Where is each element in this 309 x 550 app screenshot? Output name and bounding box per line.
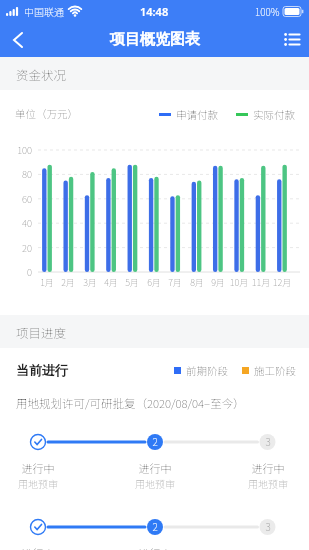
staticText: 4月 <box>99 276 123 289</box>
staticText: 20 <box>8 241 32 255</box>
staticText: 11月 <box>249 276 273 289</box>
staticText: 申请付款 <box>176 107 218 122</box>
staticText: 项目概览图表 <box>110 30 200 49</box>
staticText: 用地预审 <box>243 476 293 490</box>
staticText: 2 <box>147 434 163 448</box>
staticText: 中国联通 <box>24 4 64 18</box>
staticText: 单位（万元） <box>15 106 78 121</box>
staticText: 14:48 <box>140 4 169 19</box>
staticText: 进行中 <box>130 545 180 550</box>
staticText: 60 <box>8 192 32 206</box>
staticText: 资金状况 <box>16 65 67 83</box>
staticText: 100% <box>255 4 280 18</box>
staticText: 80 <box>8 167 32 181</box>
button[interactable] <box>274 22 309 57</box>
staticText: 7月 <box>163 276 187 289</box>
staticText: 前期阶段 <box>186 363 228 378</box>
staticText: 施工阶段 <box>254 363 296 378</box>
staticText: 3月 <box>78 276 102 289</box>
staticText: 3 <box>260 434 276 448</box>
staticText: 40 <box>8 216 32 230</box>
staticText: 实际付款 <box>253 107 295 122</box>
staticText: 进行中 <box>13 545 63 550</box>
staticText: 12月 <box>270 276 294 289</box>
staticText: 用地规划许可/可研批复（2020/08/04–至今） <box>16 395 245 412</box>
staticText: 进行中 <box>130 460 180 476</box>
staticText: 100 <box>8 143 32 157</box>
staticText: 9月 <box>206 276 230 289</box>
staticText: 1月 <box>35 276 59 289</box>
staticText: 当前进行 <box>16 362 68 378</box>
staticText: 2月 <box>56 276 80 289</box>
staticText: 6月 <box>142 276 166 289</box>
staticText: 5月 <box>120 276 144 289</box>
staticText: 3 <box>260 519 276 533</box>
staticText: 用地预审 <box>13 476 63 490</box>
staticText: 10月 <box>227 276 251 289</box>
staticText: 进行中 <box>13 460 63 476</box>
staticText: 用地预审 <box>130 476 180 490</box>
staticText: 8月 <box>185 276 209 289</box>
staticText: 进行中 <box>243 460 293 476</box>
button[interactable] <box>0 22 35 57</box>
staticText: 2 <box>147 519 163 533</box>
staticText: 0 <box>8 265 32 279</box>
staticText: 项目进度 <box>16 323 67 341</box>
